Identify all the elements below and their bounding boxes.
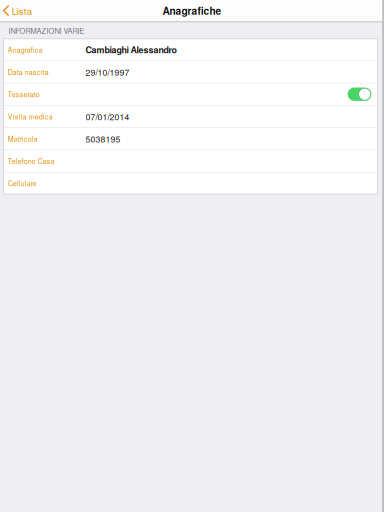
button[interactable]: Tesserato [3,83,378,106]
staticText: Lista [12,4,32,17]
button[interactable]: Lista [0,0,37,21]
staticText: Tesserato [8,89,40,99]
button[interactable]: Matricola [3,128,378,150]
staticText: Anagrafica [8,45,43,55]
button[interactable]: Anagrafica [3,39,378,61]
staticText: Matricola [8,134,38,144]
staticText: INFORMAZIONI VARIE [8,25,84,36]
staticText: Cellulare [8,178,37,188]
staticText: Anagrafiche [162,3,221,18]
button[interactable]: Tesserato [348,87,371,101]
staticText: Cambiaghi Alessandro [86,43,177,56]
button[interactable]: Data nascita [3,61,378,83]
button[interactable]: Cellulare [3,172,378,194]
button[interactable]: Telefono Casa [3,150,378,172]
staticText: Telefono Casa [8,156,55,166]
staticText: Data nascita [8,67,49,77]
staticText: 5038195 [86,133,121,145]
staticText: 29/10/1997 [86,66,130,78]
staticText: Visita medica [8,111,53,121]
staticText: 07/01/2014 [86,110,130,123]
button[interactable]: Visita medica [3,106,378,128]
